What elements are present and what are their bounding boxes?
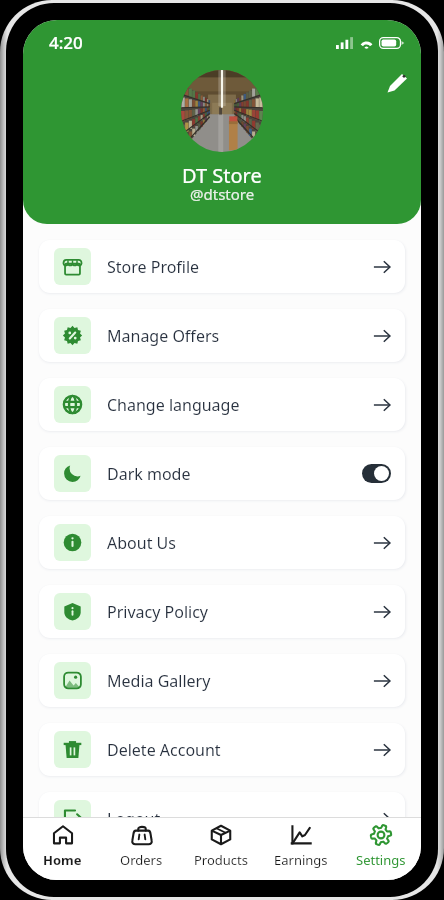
staticText: Settings: [356, 851, 406, 869]
button[interactable]: Orders: [102, 818, 181, 875]
button[interactable]: Delete Account: [39, 723, 405, 776]
staticText: Logout: [107, 808, 161, 830]
button[interactable]: Dark mode toggle: [362, 464, 391, 483]
button[interactable]: Media Gallery: [39, 654, 405, 707]
staticText: Orders: [120, 851, 163, 869]
button[interactable]: Edit profile: [377, 64, 415, 102]
button[interactable]: Store Profile: [39, 240, 405, 293]
staticText: Products: [194, 851, 249, 869]
button[interactable]: Privacy Policy: [39, 585, 405, 638]
staticText: Manage Offers: [107, 325, 220, 347]
staticText: DT Store: [182, 162, 262, 189]
staticText: Privacy Policy: [107, 601, 208, 623]
button[interactable]: About Us: [39, 516, 405, 569]
staticText: Store Profile: [107, 256, 200, 278]
staticText: About Us: [107, 532, 176, 554]
button[interactable]: Settings: [341, 818, 421, 875]
button[interactable]: Manage Offers: [39, 309, 405, 362]
button[interactable]: Dark mode: [39, 447, 405, 500]
staticText: Home: [43, 851, 82, 869]
button[interactable]: Logout: [39, 792, 405, 845]
button[interactable]: Products: [181, 818, 261, 875]
button[interactable]: Earnings: [261, 818, 341, 875]
button[interactable]: Home: [23, 818, 102, 875]
staticText: 4:20: [49, 31, 83, 54]
button[interactable]: Change language: [39, 378, 405, 431]
staticText: Dark mode: [107, 463, 191, 485]
staticText: Change language: [107, 394, 240, 416]
staticText: Media Gallery: [107, 670, 211, 692]
staticText: Earnings: [274, 851, 328, 869]
staticText: @dtstore: [190, 184, 255, 204]
staticText: Delete Account: [107, 739, 221, 761]
